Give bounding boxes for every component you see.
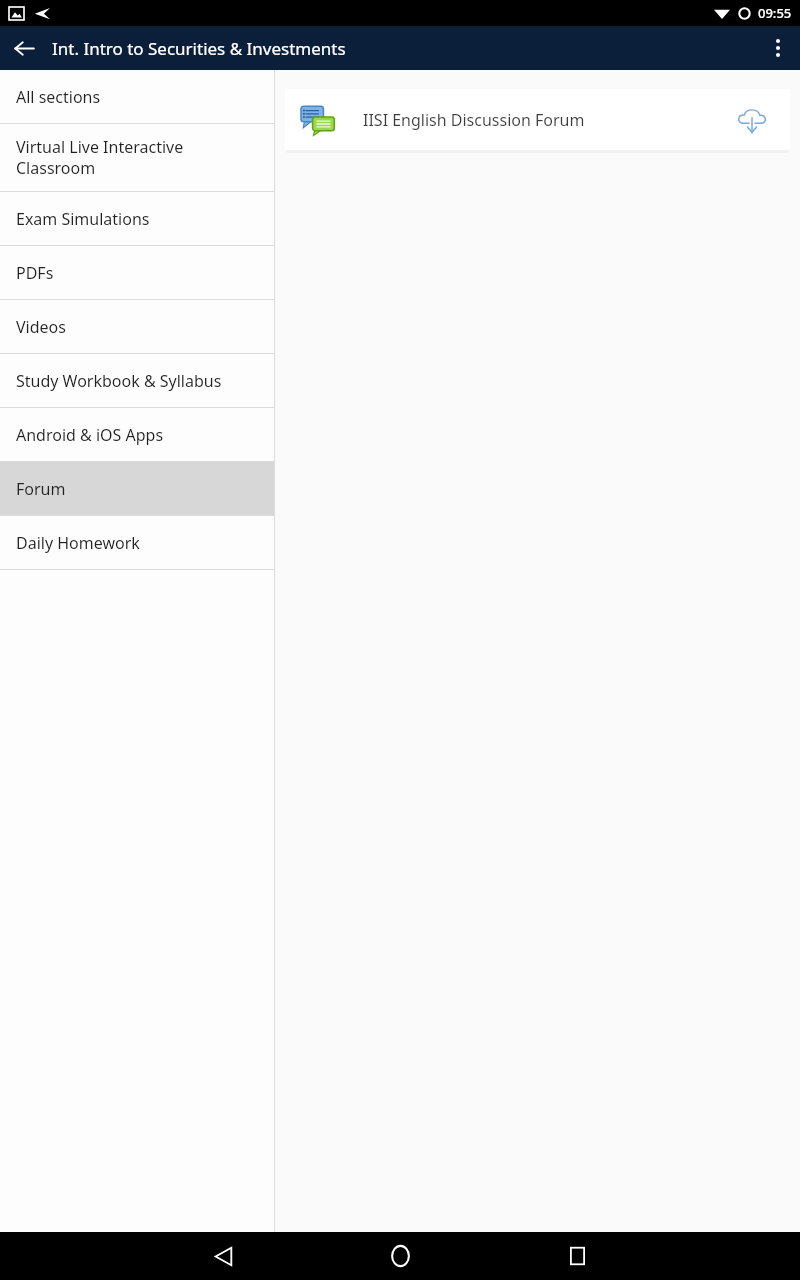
button[interactable]: Back bbox=[0, 26, 48, 70]
button[interactable]: Recent apps bbox=[553, 1232, 601, 1280]
button[interactable]: Daily Homework bbox=[0, 516, 274, 569]
staticText: Daily Homework bbox=[16, 532, 140, 554]
button[interactable]: All sections bbox=[0, 70, 274, 123]
button[interactable]: Study Workbook & Syllabus bbox=[0, 354, 274, 407]
staticText: All sections bbox=[16, 86, 101, 108]
button[interactable]: Back bbox=[199, 1232, 247, 1280]
button[interactable]: Exam Simulations bbox=[0, 192, 274, 245]
button[interactable]: More options bbox=[756, 26, 800, 70]
button[interactable]: PDFs bbox=[0, 246, 274, 299]
staticText: IISI English Discussion Forum bbox=[363, 109, 730, 131]
staticText: Virtual Live Interactive Classroom bbox=[16, 136, 258, 179]
staticText: Forum bbox=[16, 478, 66, 500]
button[interactable]: Forum bbox=[0, 462, 274, 515]
staticText: 09:55 bbox=[758, 4, 792, 22]
staticText: Exam Simulations bbox=[16, 208, 150, 230]
button[interactable]: Home bbox=[376, 1232, 424, 1280]
staticText: Android & iOS Apps bbox=[16, 424, 164, 446]
button[interactable]: IISI English Discussion Forum bbox=[285, 89, 790, 150]
staticText: Int. Intro to Securities & Investments bbox=[52, 37, 346, 60]
button[interactable]: Virtual Live Interactive Classroom bbox=[0, 124, 274, 191]
button[interactable]: Android & iOS Apps bbox=[0, 408, 274, 461]
staticText: Videos bbox=[16, 316, 66, 338]
button[interactable]: Download bbox=[730, 98, 774, 142]
staticText: PDFs bbox=[16, 262, 54, 284]
staticText: Study Workbook & Syllabus bbox=[16, 370, 222, 392]
button[interactable]: Videos bbox=[0, 300, 274, 353]
